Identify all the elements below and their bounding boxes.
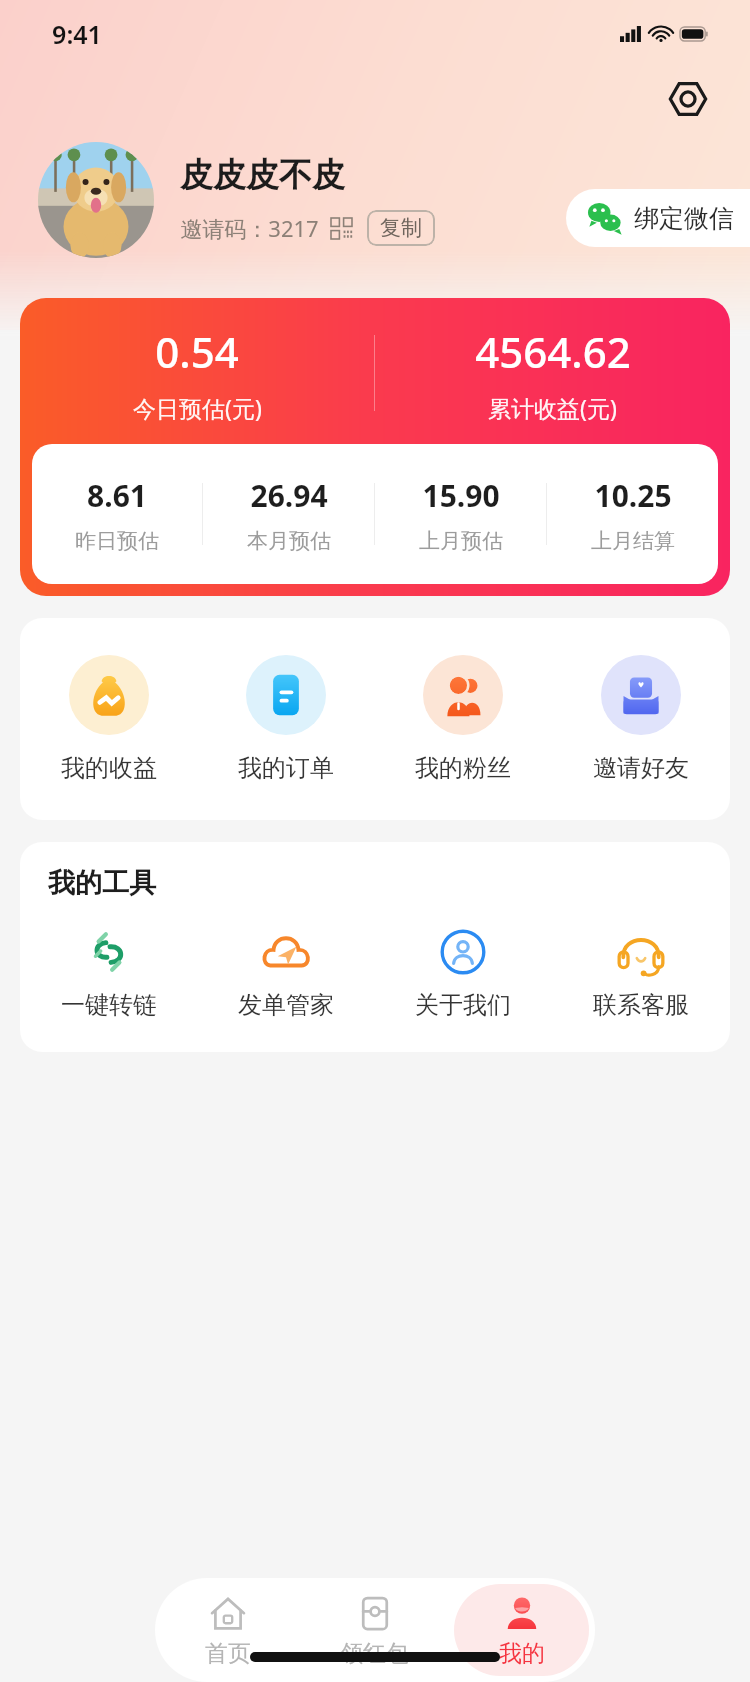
staticText: 发单管家: [238, 990, 334, 1020]
staticText: 我的: [499, 1639, 545, 1668]
button[interactable]: 26.94: [203, 475, 374, 554]
staticText: 皮皮皮不皮: [180, 154, 345, 196]
button[interactable]: 一键转链: [20, 926, 197, 1020]
staticText: 上月结算: [591, 528, 675, 554]
staticText: 8.61: [87, 475, 147, 516]
button[interactable]: 我的: [454, 1584, 589, 1676]
button[interactable]: 联系客服: [552, 926, 730, 1020]
button[interactable]: 首页: [161, 1584, 295, 1676]
button[interactable]: 8.61: [32, 475, 202, 554]
staticText: 15.90: [422, 475, 500, 516]
button[interactable]: 我的收益: [20, 618, 197, 820]
staticText: 我的收益: [61, 753, 157, 783]
button[interactable]: 复制: [367, 210, 435, 246]
staticText: 邀请码：3217: [180, 213, 319, 243]
staticText: 我的订单: [238, 753, 334, 783]
button[interactable]: 邀请好友: [552, 618, 730, 820]
staticText: 邀请好友: [593, 753, 689, 783]
staticText: 首页: [205, 1639, 251, 1668]
staticText: 本月预估: [247, 528, 331, 554]
staticText: 9:41: [52, 17, 102, 51]
staticText: 我的粉丝: [415, 753, 511, 783]
button[interactable]: 我的粉丝: [374, 618, 552, 820]
button[interactable]: 发单管家: [197, 926, 374, 1020]
staticText: 联系客服: [593, 990, 689, 1020]
staticText: 上月预估: [419, 528, 503, 554]
staticText: 我的工具: [48, 866, 156, 900]
staticText: 领红包: [340, 1639, 409, 1668]
button[interactable]: 4564.62: [375, 323, 730, 423]
staticText: 关于我们: [415, 990, 511, 1020]
staticText: 绑定微信: [634, 203, 734, 234]
staticText: 一键转链: [61, 990, 157, 1020]
staticText: 10.25: [594, 475, 672, 516]
staticText: 今日预估(元): [133, 392, 262, 423]
button[interactable]: 领红包: [307, 1584, 442, 1676]
staticText: 26.94: [250, 475, 328, 516]
staticText: 累计收益(元): [488, 392, 617, 423]
button[interactable]: QR code: [329, 216, 353, 240]
staticText: 复制: [380, 215, 422, 241]
staticText: 4564.62: [475, 323, 631, 380]
button[interactable]: Avatar: [38, 142, 154, 258]
button[interactable]: 我的订单: [197, 618, 374, 820]
button[interactable]: Settings: [666, 77, 710, 121]
button[interactable]: 0.54: [20, 323, 374, 423]
staticText: 0.54: [155, 323, 239, 380]
button[interactable]: 绑定微信: [566, 189, 750, 247]
button[interactable]: 关于我们: [374, 926, 552, 1020]
button[interactable]: 10.25: [547, 475, 718, 554]
button[interactable]: 15.90: [375, 475, 546, 554]
staticText: 昨日预估: [75, 528, 159, 554]
